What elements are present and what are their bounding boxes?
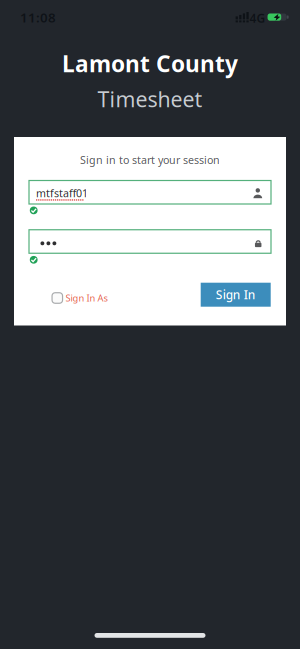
staticText: Sign in to start your session bbox=[80, 153, 220, 167]
button[interactable]: Sign In bbox=[201, 283, 271, 307]
staticText: mtfstaff01 bbox=[36, 186, 88, 200]
staticText: Sign In As bbox=[65, 292, 107, 304]
staticText: Lamont County bbox=[62, 48, 238, 78]
button[interactable]: Password bbox=[29, 230, 271, 253]
staticText: Sign In bbox=[216, 287, 256, 303]
staticText: 4G bbox=[249, 10, 265, 26]
button[interactable]: Sign In As bbox=[52, 291, 126, 305]
button[interactable]: mtfstaff01 bbox=[29, 180, 271, 204]
staticText: 11:08 bbox=[20, 8, 56, 26]
staticText: Timesheet bbox=[97, 85, 202, 113]
